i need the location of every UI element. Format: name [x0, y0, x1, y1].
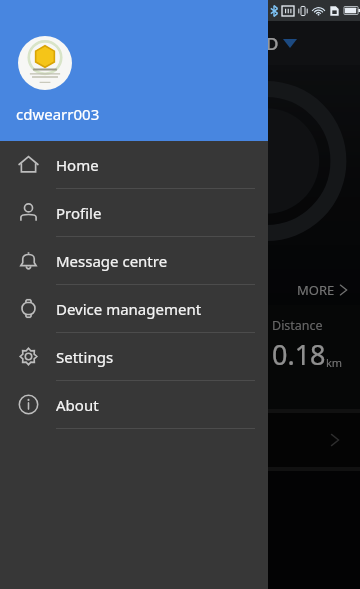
button[interactable]: Profile	[0, 189, 268, 237]
button[interactable]: cdwearr003	[0, 0, 268, 141]
button[interactable]: Device management	[0, 285, 268, 333]
staticText: Home	[56, 155, 99, 175]
staticText: km	[326, 355, 343, 370]
button[interactable]: MORE	[297, 281, 348, 299]
staticText: D	[266, 32, 279, 55]
staticText: MORE	[297, 281, 335, 299]
button[interactable]	[0, 413, 360, 467]
button[interactable]: Select device	[283, 39, 297, 48]
staticText: Settings	[56, 347, 114, 367]
staticText: cdwearr003	[16, 104, 100, 124]
staticText: Profile	[56, 203, 102, 223]
staticText: Device management	[56, 299, 202, 319]
staticText: About	[56, 395, 99, 415]
button[interactable]: Message centre	[0, 237, 268, 285]
button[interactable]: Settings	[0, 333, 268, 381]
staticText: Message centre	[56, 251, 168, 271]
button[interactable]: Home	[0, 141, 268, 189]
staticText: 0.18	[272, 336, 326, 373]
button[interactable]: About	[0, 381, 268, 429]
button[interactable]: Distance	[0, 305, 360, 409]
staticText: Distance	[272, 317, 323, 334]
